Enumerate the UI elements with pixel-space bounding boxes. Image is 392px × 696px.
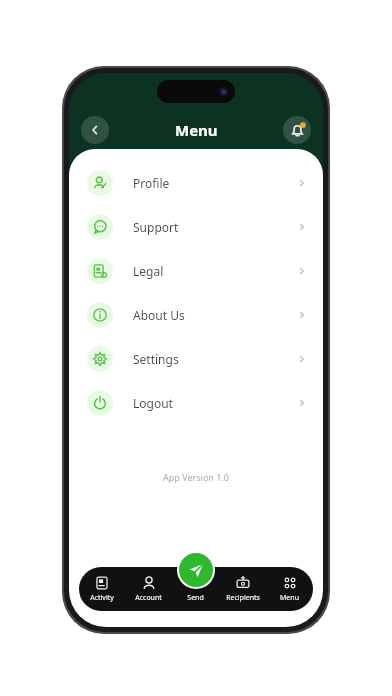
button[interactable]: Activity (79, 571, 125, 607)
button[interactable]: Send (179, 553, 213, 587)
button[interactable]: Back (81, 116, 109, 144)
button[interactable]: Legal (69, 249, 323, 293)
staticText: About Us (133, 307, 185, 323)
button[interactable]: Profile (69, 161, 323, 205)
button[interactable]: Logout (69, 381, 323, 425)
staticText: Support (133, 219, 179, 235)
button[interactable]: About Us (69, 293, 323, 337)
staticText: Recipients (226, 593, 260, 603)
staticText: Logout (133, 395, 173, 411)
button[interactable]: Settings (69, 337, 323, 381)
staticText: Account (135, 593, 162, 603)
staticText: Settings (133, 351, 179, 367)
staticText: Activity (90, 593, 114, 603)
button[interactable]: Menu (266, 571, 313, 607)
button[interactable]: Recipients (219, 571, 266, 607)
button[interactable]: Send (172, 571, 219, 607)
button[interactable]: Notifications (283, 116, 311, 144)
button[interactable]: Account (125, 571, 172, 607)
staticText: App Version 1.0 (69, 471, 323, 483)
staticText: Menu (280, 593, 299, 603)
staticText: Menu (175, 120, 218, 140)
staticText: Profile (133, 175, 170, 191)
staticText: Send (187, 593, 204, 603)
button[interactable]: Support (69, 205, 323, 249)
staticText: Legal (133, 263, 164, 279)
